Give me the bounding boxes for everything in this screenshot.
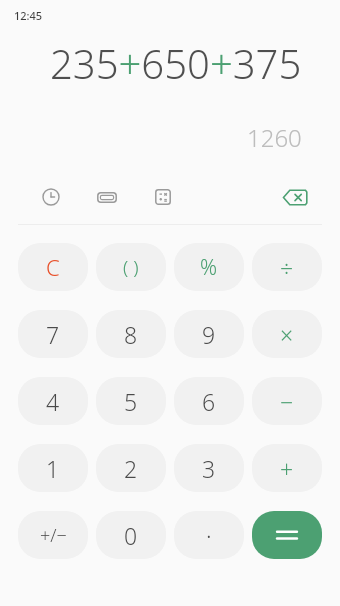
button[interactable]: 5 xyxy=(96,377,166,425)
staticText: + xyxy=(280,453,294,484)
button[interactable]: History xyxy=(34,180,68,214)
staticText: 0 xyxy=(124,520,138,551)
staticText: 12:45 xyxy=(14,8,43,23)
staticText: 7 xyxy=(46,319,60,350)
button[interactable]: 7 xyxy=(18,310,88,358)
button[interactable]: 6 xyxy=(174,377,244,425)
staticText: 1260 xyxy=(247,121,302,154)
button[interactable]: 2 xyxy=(96,444,166,492)
staticText: 6 xyxy=(202,386,216,417)
staticText: +/− xyxy=(40,523,67,548)
staticText: 8 xyxy=(124,319,138,350)
staticText: ÷ xyxy=(280,252,294,283)
button[interactable]: 8 xyxy=(96,310,166,358)
staticText: · xyxy=(206,520,212,551)
button[interactable]: 0 xyxy=(96,511,166,559)
button[interactable]: 4 xyxy=(18,377,88,425)
button[interactable]: +/− xyxy=(18,511,88,559)
staticText: − xyxy=(280,386,294,417)
staticText: C xyxy=(46,252,60,282)
button[interactable]: ( ) xyxy=(96,243,166,291)
staticText: 1 xyxy=(46,453,60,484)
button[interactable]: % xyxy=(174,243,244,291)
button[interactable]: 3 xyxy=(174,444,244,492)
button[interactable]: Equals xyxy=(252,511,322,559)
button[interactable]: Unit converter xyxy=(90,180,124,214)
button[interactable]: C xyxy=(18,243,88,291)
staticText: 235+650+375 xyxy=(50,36,302,90)
button[interactable]: 9 xyxy=(174,310,244,358)
staticText: ( ) xyxy=(123,254,139,280)
staticText: × xyxy=(280,319,294,350)
staticText: 3 xyxy=(202,453,216,484)
button[interactable]: + xyxy=(252,444,322,492)
button[interactable]: × xyxy=(252,310,322,358)
staticText: 2 xyxy=(124,453,138,484)
button[interactable]: Scientific mode xyxy=(146,180,180,214)
staticText: % xyxy=(200,253,218,282)
staticText: 9 xyxy=(202,319,216,350)
staticText: 5 xyxy=(124,386,138,417)
button[interactable]: − xyxy=(252,377,322,425)
button[interactable]: 1 xyxy=(18,444,88,492)
button[interactable]: ÷ xyxy=(252,243,322,291)
button[interactable]: · xyxy=(174,511,244,559)
button[interactable]: Backspace xyxy=(276,178,314,216)
staticText: 4 xyxy=(46,386,60,417)
